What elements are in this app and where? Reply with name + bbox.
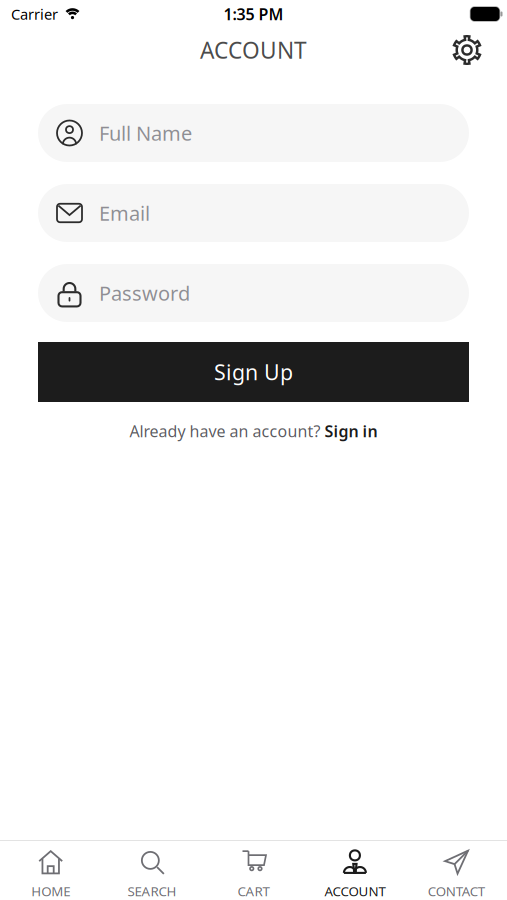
button[interactable]: Full Name <box>38 104 469 162</box>
button[interactable]: SEARCH <box>101 840 203 900</box>
button[interactable]: Email <box>38 184 469 242</box>
button[interactable]: ACCOUNT <box>304 840 406 900</box>
button[interactable]: HOME <box>0 840 101 900</box>
staticText: ACCOUNT <box>200 35 307 65</box>
button[interactable]: Settings <box>445 28 489 72</box>
staticText: Sign in <box>324 420 377 442</box>
staticText: CART <box>237 882 269 900</box>
staticText: Already have an account? <box>129 420 324 442</box>
button[interactable]: Already have an account? <box>129 417 377 445</box>
staticText: ACCOUNT <box>324 882 385 900</box>
staticText: Password <box>99 280 190 306</box>
staticText: Full Name <box>99 120 192 146</box>
button[interactable]: Password <box>38 264 469 322</box>
button[interactable]: CONTACT <box>406 840 507 900</box>
staticText: Carrier <box>11 4 58 24</box>
button[interactable]: CART <box>203 840 304 900</box>
staticText: Email <box>99 200 150 226</box>
button[interactable]: Sign Up <box>38 342 469 402</box>
staticText: HOME <box>31 882 70 900</box>
staticText: CONTACT <box>428 882 485 900</box>
staticText: SEARCH <box>128 882 177 900</box>
staticText: Sign Up <box>214 358 293 386</box>
staticText: 1:35 PM <box>223 3 283 25</box>
